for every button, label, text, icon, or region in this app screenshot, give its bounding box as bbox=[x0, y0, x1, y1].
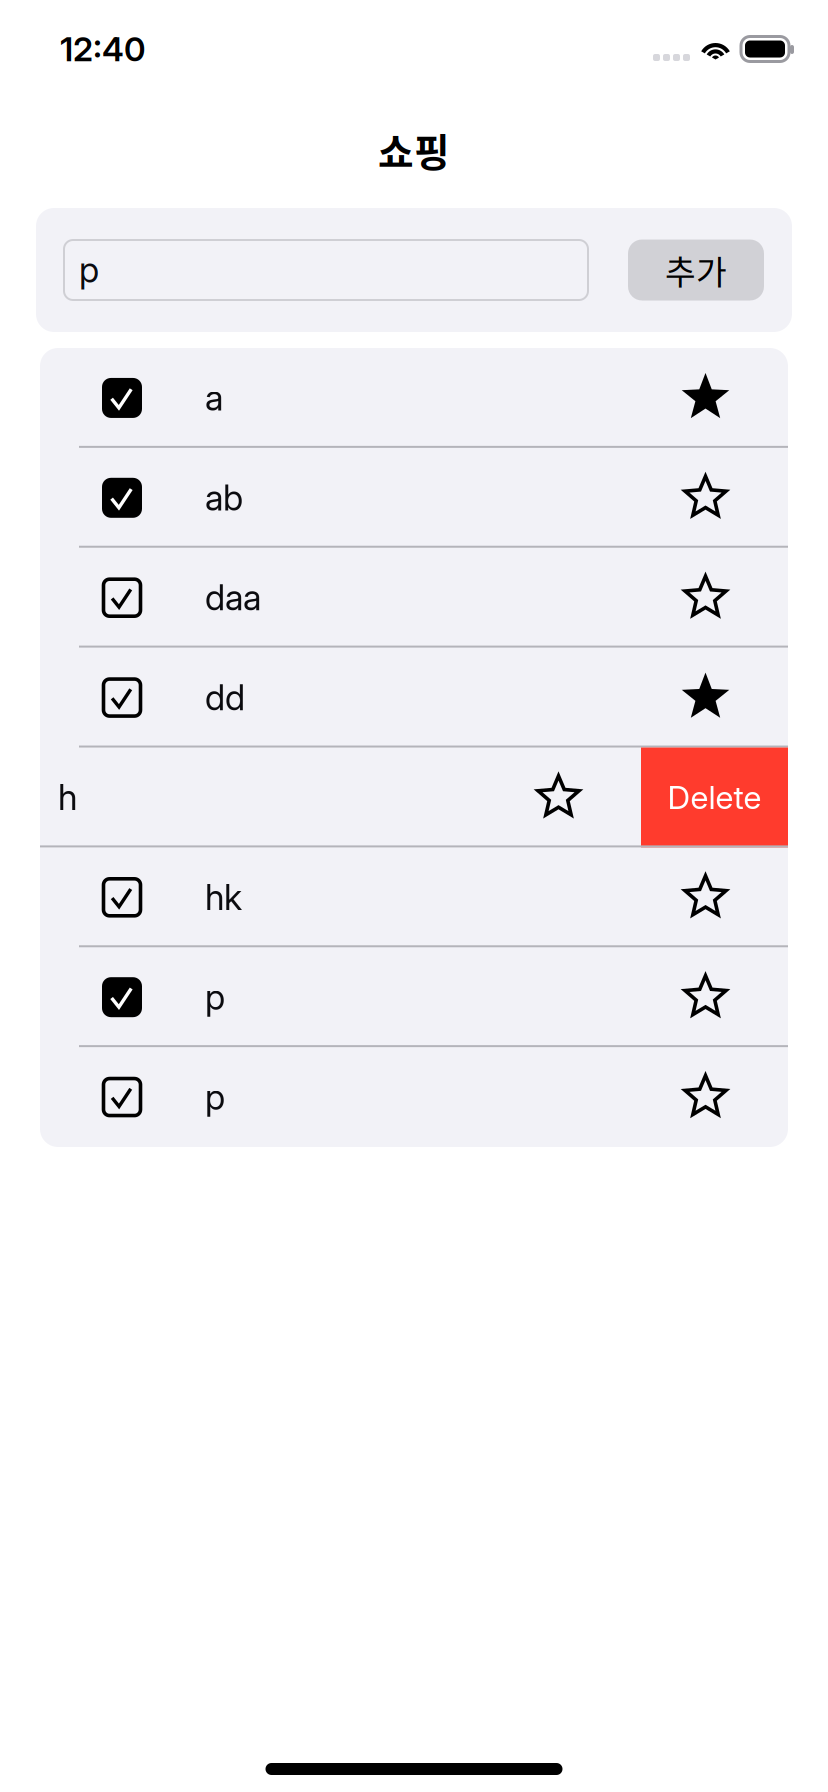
button[interactable]: hk bbox=[40, 847, 788, 947]
staticText: ab bbox=[205, 477, 243, 519]
button[interactable]: Delete bbox=[641, 747, 788, 847]
button[interactable]: p bbox=[40, 1047, 788, 1147]
staticText: daa bbox=[205, 577, 261, 619]
button[interactable]: Toggle hk bbox=[40, 847, 165, 947]
staticText: dd bbox=[205, 677, 245, 718]
staticText: a bbox=[205, 377, 223, 419]
staticText: p bbox=[205, 1076, 225, 1118]
button[interactable]: daa bbox=[40, 548, 788, 648]
button[interactable]: dd bbox=[40, 648, 788, 747]
button[interactable]: Favourite daa bbox=[656, 548, 788, 648]
button[interactable]: Favourite hk bbox=[656, 847, 788, 947]
button[interactable]: h bbox=[0, 747, 641, 847]
button[interactable]: Toggle daa bbox=[40, 548, 165, 648]
button[interactable]: a bbox=[40, 348, 788, 448]
button[interactable]: Toggle a bbox=[40, 348, 165, 448]
button[interactable]: Toggle dd bbox=[40, 648, 165, 747]
button[interactable]: Toggle p bbox=[40, 947, 165, 1047]
staticText: 12:40 bbox=[60, 29, 146, 69]
button[interactable]: 추가 bbox=[628, 239, 764, 300]
staticText: 쇼핑 bbox=[378, 122, 450, 178]
staticText: p bbox=[79, 249, 99, 291]
button[interactable]: Toggle p bbox=[40, 1047, 165, 1147]
button[interactable]: Favourite dd bbox=[656, 648, 788, 747]
button[interactable]: ab bbox=[40, 448, 788, 548]
button[interactable]: p bbox=[40, 947, 788, 1047]
staticText: hk bbox=[205, 876, 242, 918]
button[interactable]: Favourite h bbox=[509, 747, 641, 847]
button[interactable]: Favourite p bbox=[656, 947, 788, 1047]
button[interactable]: Favourite p bbox=[656, 1047, 788, 1147]
staticText: 추가 bbox=[665, 246, 727, 294]
staticText: h bbox=[58, 776, 77, 818]
button[interactable]: Favourite a bbox=[656, 348, 788, 448]
button[interactable]: Toggle ab bbox=[40, 448, 165, 548]
staticText: Delete bbox=[667, 778, 761, 817]
button[interactable]: Favourite ab bbox=[656, 448, 788, 548]
staticText: p bbox=[205, 976, 225, 1018]
